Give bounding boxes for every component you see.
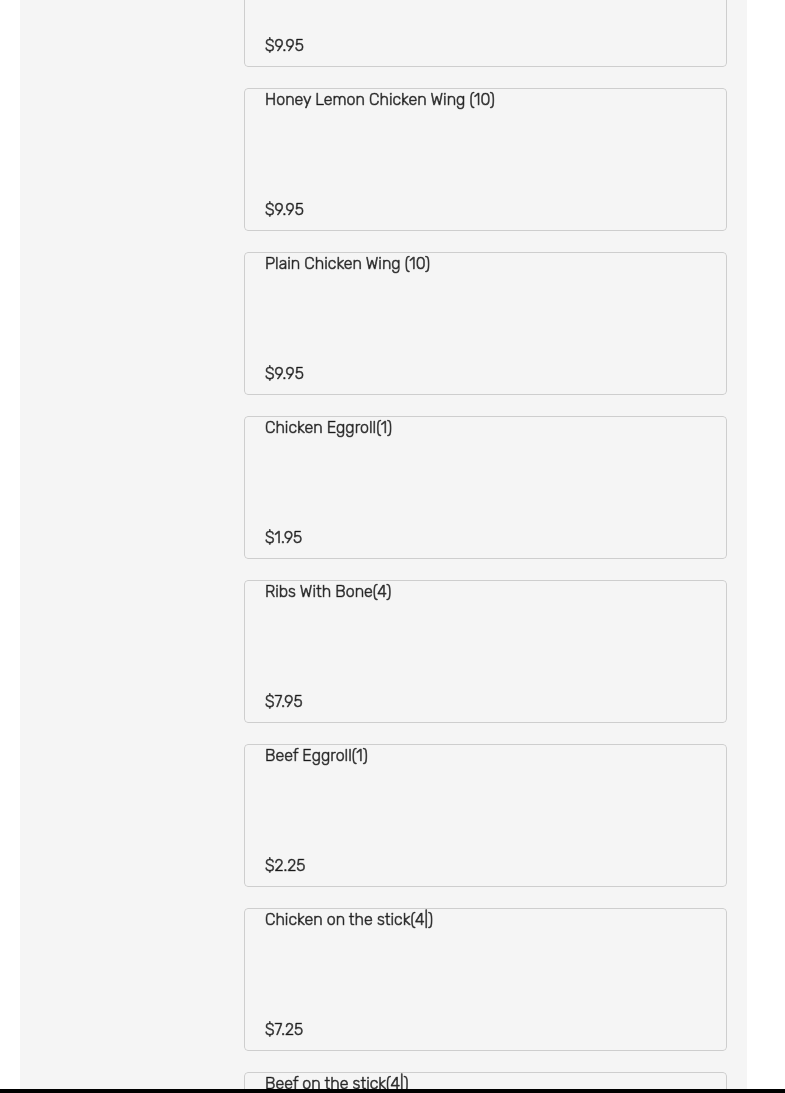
button[interactable]: Chicken on the stick(4|) [244, 908, 727, 1051]
staticText: $9.95 [265, 36, 304, 55]
button[interactable]: Beef Eggroll(1) [244, 744, 727, 887]
staticText: $2.25 [265, 856, 306, 875]
staticText: Beef Eggroll(1) [265, 746, 368, 765]
staticText: $9.95 [265, 200, 304, 219]
button[interactable]: Spicy Chicken Wing (10) [244, 0, 727, 67]
staticText: Plain Chicken Wing (10) [265, 254, 431, 273]
staticText: Ribs With Bone(4) [265, 582, 392, 601]
button[interactable]: Ribs With Bone(4) [244, 580, 727, 723]
staticText: $9.95 [265, 364, 304, 383]
button[interactable]: Plain Chicken Wing (10) [244, 252, 727, 395]
staticText: Chicken Eggroll(1) [265, 418, 393, 437]
staticText: $7.25 [265, 1020, 304, 1039]
staticText: $7.95 [265, 692, 303, 711]
staticText: Honey Lemon Chicken Wing (10) [265, 90, 495, 109]
button[interactable]: Beef on the stick(4|) [244, 1072, 727, 1093]
staticText: $1.95 [265, 528, 303, 547]
staticText: Chicken on the stick(4|) [265, 910, 434, 929]
button[interactable]: Honey Lemon Chicken Wing (10) [244, 88, 727, 231]
staticText: Beef on the stick(4|) [265, 1074, 409, 1093]
button[interactable]: Chicken Eggroll(1) [244, 416, 727, 559]
